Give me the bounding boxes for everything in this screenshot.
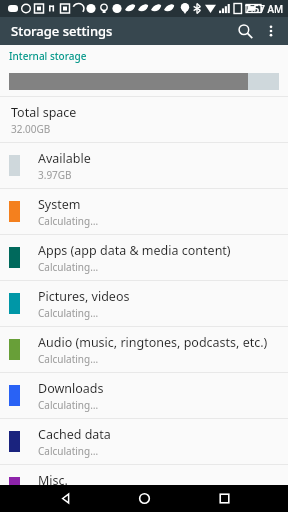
button[interactable]: Apps (app data & media content) [0, 235, 288, 280]
staticText: Apps (app data & media content) [38, 242, 231, 259]
button[interactable]: Total space [0, 97, 288, 142]
button[interactable]: Recent apps [209, 485, 239, 512]
button[interactable]: System [0, 189, 288, 234]
staticText: 7:57 AM [245, 2, 284, 16]
staticText: 3.97GB [38, 168, 72, 182]
button[interactable]: Cached data [0, 419, 288, 464]
button[interactable]: Downloads [0, 373, 288, 418]
staticText: Calculating… [38, 444, 99, 458]
button[interactable]: Pictures, videos [0, 281, 288, 326]
staticText: Cached data [38, 426, 111, 443]
staticText: System [38, 196, 81, 213]
staticText: Audio (music, ringtones, podcasts, etc.) [38, 334, 268, 351]
staticText: Calculating… [38, 398, 99, 412]
staticText: Downloads [38, 380, 104, 397]
staticText: Internal storage [9, 49, 87, 63]
button[interactable]: Search [232, 18, 258, 44]
button[interactable]: Misc. [0, 465, 288, 510]
button[interactable] [0, 67, 288, 96]
staticText: Misc. [38, 472, 68, 489]
staticText: Available [38, 150, 91, 167]
staticText: Calculating… [38, 306, 99, 320]
staticText: Storage settings [11, 22, 113, 40]
button[interactable]: Home [129, 485, 159, 512]
staticText: Calculating… [38, 490, 99, 504]
staticText: Calculating… [38, 352, 99, 366]
button[interactable]: More options [258, 18, 284, 44]
button[interactable]: Back [50, 485, 80, 512]
staticText: Calculating… [38, 214, 99, 228]
staticText: Calculating… [38, 260, 99, 274]
staticText: Pictures, videos [38, 288, 130, 305]
staticText: 32.00GB [11, 122, 51, 136]
staticText: Total space [11, 104, 77, 121]
button[interactable]: Audio (music, ringtones, podcasts, etc.) [0, 327, 288, 372]
button[interactable]: Available [0, 143, 288, 188]
